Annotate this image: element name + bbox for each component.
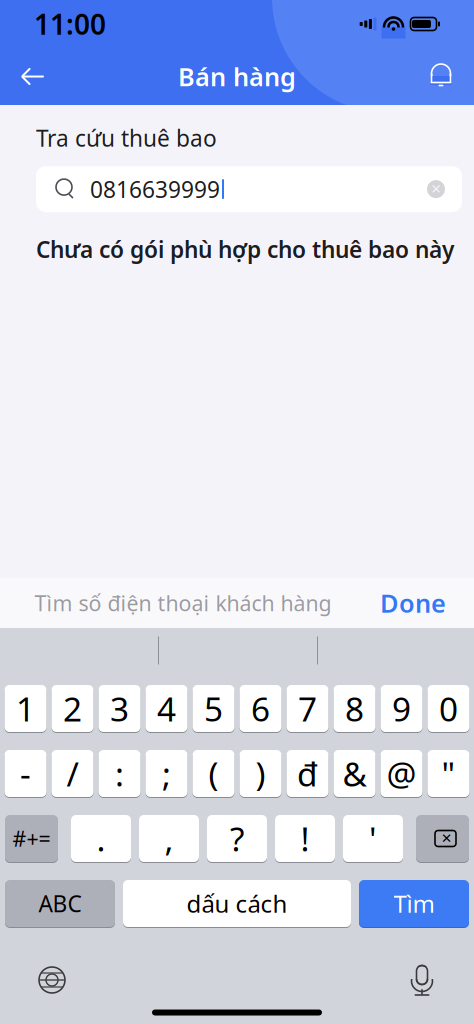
staticText: ABC — [38, 888, 81, 918]
button[interactable]: 5 — [192, 684, 234, 732]
staticText: 0816639999 — [90, 174, 220, 204]
button[interactable]: - — [4, 749, 46, 797]
button[interactable]: 3 — [98, 684, 140, 732]
staticText: đ — [297, 751, 318, 796]
button[interactable]: Back — [10, 53, 56, 99]
staticText: #+= — [12, 824, 50, 853]
button[interactable]: ABC — [5, 879, 115, 927]
staticText: . — [96, 816, 105, 861]
button[interactable]: ) — [239, 749, 281, 797]
button[interactable]: ; — [145, 749, 187, 797]
staticText: : — [115, 751, 124, 796]
staticText: 1 — [16, 686, 35, 731]
button[interactable]: 8 — [333, 684, 375, 732]
button[interactable]: 6 — [239, 684, 281, 732]
button[interactable]: Notifications — [418, 53, 464, 99]
staticText: ; — [162, 751, 171, 796]
staticText: / — [66, 751, 78, 796]
button[interactable]: Delete — [416, 814, 469, 862]
staticText: ( — [208, 751, 218, 796]
button[interactable]: 9 — [380, 684, 422, 732]
button[interactable]: / — [51, 749, 93, 797]
button[interactable]: Done — [366, 578, 460, 628]
button[interactable]: Change keyboard — [30, 958, 74, 1002]
staticText: ! — [300, 816, 309, 861]
button[interactable]: đ — [286, 749, 328, 797]
staticText: Tìm số điện thoại khách hàng — [34, 589, 331, 617]
button[interactable]: 0 — [427, 684, 469, 732]
button[interactable]: dấu cách — [123, 879, 351, 927]
button[interactable]: , — [139, 814, 199, 862]
staticText: ✕ — [430, 181, 441, 197]
button[interactable]: 4 — [145, 684, 187, 732]
button[interactable]: 2 — [51, 684, 93, 732]
staticText: 2 — [63, 686, 82, 731]
staticText: ? — [230, 816, 244, 861]
button[interactable]: Clear text — [418, 171, 454, 207]
staticText: ✕ — [441, 831, 452, 846]
staticText: dấu cách — [186, 888, 287, 919]
staticText: 11:00 — [34, 5, 106, 43]
staticText: 6 — [251, 686, 270, 731]
button[interactable]: : — [98, 749, 140, 797]
staticText: ) — [255, 751, 265, 796]
staticText: & — [342, 751, 366, 796]
button[interactable]: ? — [207, 814, 267, 862]
button[interactable]: ( — [192, 749, 234, 797]
staticText: 7 — [298, 686, 317, 731]
staticText: 8 — [345, 686, 364, 731]
staticText: 3 — [110, 686, 129, 731]
staticText: ' — [369, 816, 377, 861]
button[interactable]: ' — [343, 814, 403, 862]
staticText: 4 — [157, 686, 176, 731]
button[interactable]: Dictation — [400, 958, 444, 1002]
staticText: Tìm — [393, 888, 434, 919]
button[interactable]: #+= — [5, 814, 58, 862]
button[interactable]: Tìm — [359, 879, 469, 927]
button[interactable]: 7 — [286, 684, 328, 732]
button[interactable]: " — [427, 749, 469, 797]
staticText: - — [20, 751, 31, 796]
staticText: 9 — [392, 686, 411, 731]
staticText: , — [164, 816, 173, 861]
staticText: Done — [380, 586, 446, 620]
button[interactable]: ! — [275, 814, 335, 862]
staticText: Chưa có gói phù hợp cho thuê bao này — [36, 234, 454, 264]
staticText: " — [441, 751, 455, 796]
staticText: 0 — [439, 686, 458, 731]
button[interactable]: 1 — [4, 684, 46, 732]
button[interactable]: . — [71, 814, 131, 862]
staticText: @ — [386, 751, 416, 796]
button[interactable]: @ — [380, 749, 422, 797]
button[interactable]: & — [333, 749, 375, 797]
staticText: Bán hàng — [178, 60, 296, 93]
staticText: 5 — [204, 686, 223, 731]
staticText: Tra cứu thuê bao — [36, 123, 217, 153]
